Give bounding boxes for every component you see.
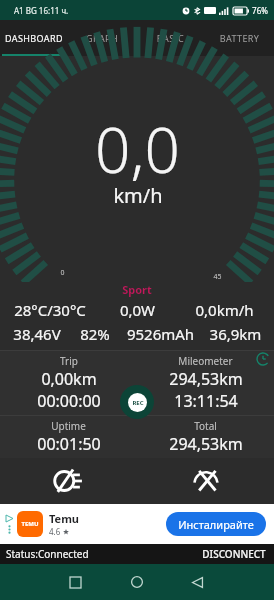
staticText: 38,46V: [4, 324, 70, 344]
staticText: Trip: [60, 354, 78, 368]
staticText: 4.6: [49, 526, 61, 537]
staticText: 28°C/30°C: [6, 300, 94, 320]
staticText: Инсталирайте: [178, 517, 254, 532]
staticText: 0,0: [95, 107, 180, 191]
staticText: Status:Connected: [6, 547, 89, 561]
staticText: 76%: [252, 5, 268, 16]
button[interactable]: DASHBOARD: [0, 20, 68, 56]
button[interactable]: Home: [106, 564, 167, 600]
button[interactable]: Record: [120, 385, 154, 419]
button[interactable]: DISCONNECT: [194, 544, 274, 564]
staticText: Uptime: [51, 419, 86, 433]
staticText: 13:11:54: [174, 390, 238, 412]
button[interactable]: Headlight off: [0, 458, 137, 504]
staticText: GRAPH: [70, 32, 134, 44]
staticText: BATTERY: [207, 32, 272, 44]
staticText: 36,9km: [201, 324, 270, 344]
staticText: 294,53km: [169, 368, 243, 390]
staticText: REC: [132, 399, 144, 407]
button[interactable]: Recents: [45, 564, 106, 600]
staticText: 00:01:50: [37, 433, 101, 455]
staticText: A1 BG 16:11 ч.: [14, 5, 69, 16]
staticText: TEMU: [21, 520, 39, 528]
staticText: 45: [213, 272, 222, 282]
staticText: BASIC: [138, 32, 203, 44]
button[interactable]: Инсталирайте: [166, 512, 266, 536]
button[interactable]: Reset trip: [256, 352, 270, 366]
staticText: 294,53km: [169, 433, 243, 455]
staticText: Sport: [0, 282, 274, 297]
button[interactable]: GRAPH: [68, 20, 136, 56]
staticText: 82%: [70, 324, 120, 344]
button[interactable]: Cruise control off: [137, 458, 274, 504]
staticText: Total: [194, 419, 217, 433]
staticText: 00:00:00: [37, 390, 101, 412]
staticText: DASHBOARD: [2, 32, 66, 44]
staticText: 9526mAh: [120, 324, 201, 344]
staticText: DISCONNECT: [202, 547, 266, 561]
staticText: 0: [60, 268, 65, 278]
staticText: km/h: [113, 182, 163, 209]
button[interactable]: BASIC: [136, 20, 205, 56]
staticText: 0,0km/h: [181, 300, 268, 320]
staticText: 0,0W: [94, 300, 181, 320]
button[interactable]: BATTERY: [205, 20, 274, 56]
staticText: Mileometer: [178, 354, 233, 368]
staticText: Temu: [49, 511, 80, 526]
staticText: 0,00km: [41, 368, 97, 390]
button[interactable]: Back: [167, 564, 228, 600]
